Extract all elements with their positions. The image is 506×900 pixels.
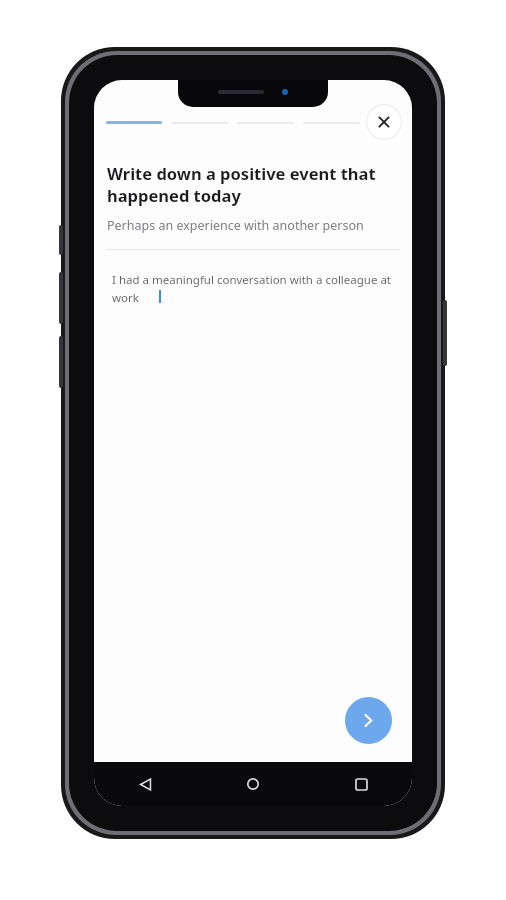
staticText: I had a meaningful conversation with a c… [112, 272, 394, 305]
button[interactable]: Close [366, 104, 402, 140]
button[interactable]: Home [236, 767, 270, 801]
button[interactable]: Next [345, 697, 392, 744]
staticText: Perhaps an experience with another perso… [107, 217, 399, 234]
button[interactable]: I had a meaningful conversation with a c… [112, 272, 394, 305]
button[interactable]: Recents [344, 767, 378, 801]
staticText: Write down a positive event that happene… [107, 162, 399, 206]
button[interactable]: Back [128, 767, 162, 801]
button[interactable] [106, 121, 162, 124]
